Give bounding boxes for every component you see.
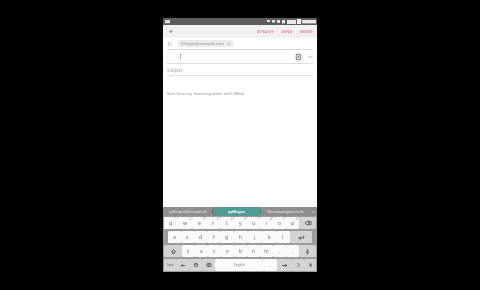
staticText: 7 <box>257 217 259 221</box>
staticText: g <box>225 234 229 241</box>
staticText: ppfilmgoa@example.de <box>169 209 207 214</box>
button[interactable]: w <box>178 217 192 229</box>
button[interactable]: Back <box>165 26 176 37</box>
button[interactable]: p <box>286 217 299 229</box>
button[interactable]: n <box>247 245 260 257</box>
staticText: Sym <box>167 263 174 267</box>
button[interactable]: . <box>286 245 299 257</box>
staticText: v <box>226 248 229 255</box>
button[interactable]: g <box>220 231 234 243</box>
button[interactable]: i <box>260 217 273 229</box>
button[interactable]: SEND <box>280 27 294 37</box>
staticText: . <box>292 248 294 255</box>
staticText: To <box>167 41 172 47</box>
button[interactable]: v <box>221 245 234 257</box>
button[interactable]: More suggestions <box>310 207 317 216</box>
button[interactable]: j <box>248 231 262 243</box>
button[interactable]: Subject <box>167 64 317 75</box>
staticText: SEND <box>281 29 293 35</box>
staticText: filmgoa@example.com <box>181 41 225 46</box>
staticText: y <box>239 220 242 227</box>
button[interactable]: Key <box>299 217 316 229</box>
button[interactable]: Key <box>277 259 292 271</box>
button[interactable]: k <box>262 231 276 243</box>
button[interactable]: Key <box>290 231 312 243</box>
staticText: w <box>183 220 187 227</box>
button[interactable]: ATTACH <box>256 27 275 37</box>
staticText: 0 <box>296 217 298 221</box>
button[interactable]: filmgoa@example.com <box>178 40 233 47</box>
staticText: , <box>279 248 281 255</box>
button[interactable]: r <box>206 217 220 229</box>
staticText: 5 <box>231 217 233 221</box>
button[interactable]: Sent from my Samsung tablet with GMail. <box>163 76 317 207</box>
staticText: Subject <box>167 67 183 73</box>
button[interactable]: t <box>220 217 234 229</box>
button[interactable]: f <box>207 231 220 243</box>
staticText: u <box>252 220 256 227</box>
staticText: 3 <box>203 217 205 221</box>
staticText: k <box>268 234 271 241</box>
button[interactable]: h <box>234 231 248 243</box>
staticText: 9 <box>283 217 285 221</box>
staticText: o <box>278 220 282 227</box>
button[interactable]: s <box>181 231 194 243</box>
staticText: 2 <box>189 217 191 221</box>
staticText: English <box>234 263 245 267</box>
staticText: 4 <box>217 217 219 221</box>
button[interactable]: l <box>276 231 290 243</box>
button[interactable]: MORE <box>299 27 314 37</box>
staticText: s <box>186 234 189 241</box>
staticText: 1 <box>175 217 177 221</box>
staticText: t <box>226 220 228 227</box>
button[interactable]: z <box>182 245 195 257</box>
button[interactable]: Add contact <box>294 52 303 61</box>
staticText: c <box>213 248 216 255</box>
staticText: q <box>169 220 173 227</box>
button[interactable]: Key <box>292 259 304 271</box>
button[interactable]: q <box>164 217 178 229</box>
button[interactable]: u <box>247 217 260 229</box>
button[interactable]: Key <box>304 259 316 271</box>
button[interactable]: . <box>264 259 277 271</box>
staticText: d <box>199 234 203 241</box>
button[interactable]: a <box>168 231 181 243</box>
staticText: . <box>270 262 272 268</box>
staticText: r <box>212 220 215 227</box>
button[interactable]: b <box>234 245 247 257</box>
button[interactable]: Space <box>215 259 264 271</box>
staticText: 8 <box>270 217 272 221</box>
staticText: MORE <box>300 29 313 35</box>
button[interactable]: , <box>273 245 286 257</box>
button[interactable]: Key <box>189 259 202 271</box>
staticText: m <box>264 248 269 255</box>
staticText: ATTACH <box>257 29 274 35</box>
button[interactable]: Expand recipients <box>305 52 314 61</box>
button[interactable]: ppfilmgoa <box>213 207 260 216</box>
button[interactable]: Key <box>299 245 316 257</box>
button[interactable]: d <box>194 231 207 243</box>
button[interactable]: Key <box>164 259 176 271</box>
staticText: b <box>239 248 243 255</box>
button[interactable]: c <box>208 245 221 257</box>
button[interactable]: x <box>195 245 208 257</box>
staticText: z <box>187 248 190 255</box>
staticText: Sent from my Samsung tablet with GMail. <box>167 91 245 96</box>
button[interactable]: m <box>260 245 273 257</box>
button[interactable]: ffiimoaexamplecom.de <box>261 207 310 216</box>
staticText: j <box>254 234 256 241</box>
button[interactable]: Key <box>202 259 215 271</box>
button[interactable]: ppfilmgoa@example.de <box>163 207 212 216</box>
button[interactable]: e <box>192 217 206 229</box>
button[interactable]: Key <box>176 259 189 271</box>
staticText: ffiimoaexamplecom.de <box>267 209 304 214</box>
staticText: ppfilmgoa <box>228 209 245 214</box>
button[interactable]: o <box>273 217 286 229</box>
staticText: i <box>266 220 268 227</box>
staticText: x <box>200 248 203 255</box>
staticText: p <box>291 220 295 227</box>
staticText: l <box>282 234 284 241</box>
staticText: f <box>213 234 215 241</box>
button[interactable]: Key <box>164 245 182 257</box>
button[interactable]: y <box>234 217 247 229</box>
